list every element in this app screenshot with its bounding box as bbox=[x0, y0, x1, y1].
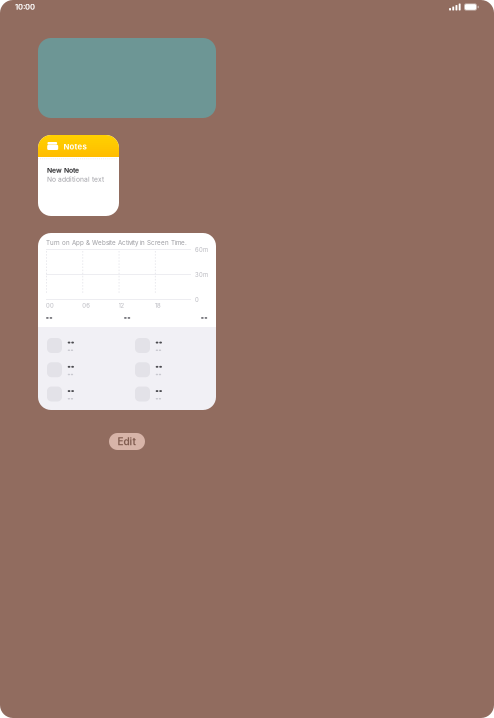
staticText: 12 bbox=[119, 302, 125, 309]
staticText: No additional text bbox=[47, 175, 104, 183]
button[interactable]: Blank widget bbox=[38, 38, 216, 118]
staticText: Edit bbox=[117, 435, 136, 448]
staticText: 06 bbox=[82, 302, 90, 309]
staticText: 18 bbox=[155, 302, 161, 309]
staticText: 00 bbox=[46, 302, 54, 309]
button[interactable]: Notes bbox=[38, 135, 119, 216]
staticText: Notes bbox=[64, 142, 87, 151]
staticText: 0 bbox=[195, 296, 199, 303]
button[interactable]: Edit bbox=[109, 433, 145, 450]
staticText: 60m bbox=[195, 246, 208, 253]
button[interactable]: Screen Time widget bbox=[38, 233, 216, 410]
staticText: Turn on App & Website Activity in Screen… bbox=[46, 239, 187, 246]
staticText: 30m bbox=[195, 271, 208, 278]
staticText: 10:00 bbox=[15, 2, 35, 11]
staticText: New Note bbox=[47, 166, 79, 174]
